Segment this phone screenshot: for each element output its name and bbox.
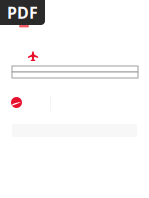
button[interactable] xyxy=(12,72,138,78)
button[interactable]: Flights xyxy=(28,51,38,61)
button[interactable]: PDF xyxy=(0,0,45,25)
button[interactable]: Airline home xyxy=(11,97,22,108)
staticText: PDF xyxy=(7,2,38,23)
button[interactable] xyxy=(12,66,138,72)
